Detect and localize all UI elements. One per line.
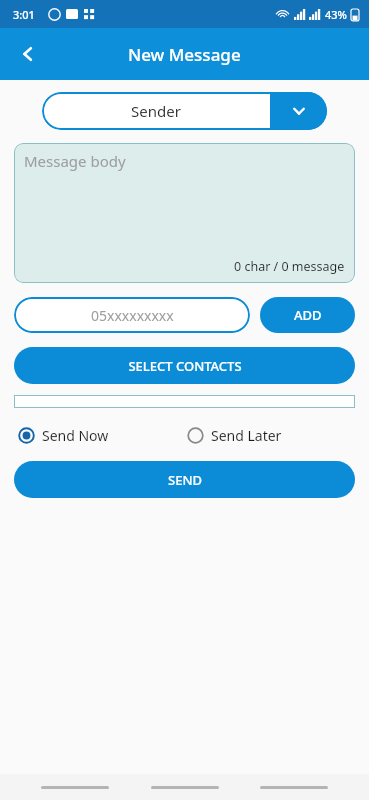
button[interactable]: Send Later <box>187 426 282 445</box>
button[interactable]: 05xxxxxxxxx <box>14 297 250 333</box>
staticText: 43% <box>325 7 347 22</box>
staticText: Sender <box>131 101 181 121</box>
staticText: Send Now <box>42 426 109 445</box>
staticText: Send Later <box>211 426 282 445</box>
button[interactable] <box>260 786 328 789</box>
button[interactable] <box>151 786 219 789</box>
button[interactable] <box>14 395 355 408</box>
button[interactable] <box>41 786 109 789</box>
button[interactable]: Message body <box>14 143 355 283</box>
button[interactable]: Send Now <box>18 426 109 445</box>
button[interactable]: SEND <box>14 461 355 498</box>
staticText: 05xxxxxxxxx <box>91 306 174 325</box>
button[interactable]: SELECT CONTACTS <box>14 347 355 384</box>
staticText: New Message <box>128 43 241 66</box>
staticText: 0 char / 0 message <box>234 258 345 275</box>
staticText: Message body <box>24 151 126 171</box>
staticText: SELECT CONTACTS <box>128 357 242 375</box>
button[interactable]: Back <box>8 34 48 74</box>
button[interactable]: Sender <box>42 92 327 130</box>
staticText: 3:01 <box>13 7 35 22</box>
button[interactable]: ADD <box>260 297 355 333</box>
staticText: SEND <box>168 471 202 489</box>
staticText: ADD <box>294 306 322 324</box>
